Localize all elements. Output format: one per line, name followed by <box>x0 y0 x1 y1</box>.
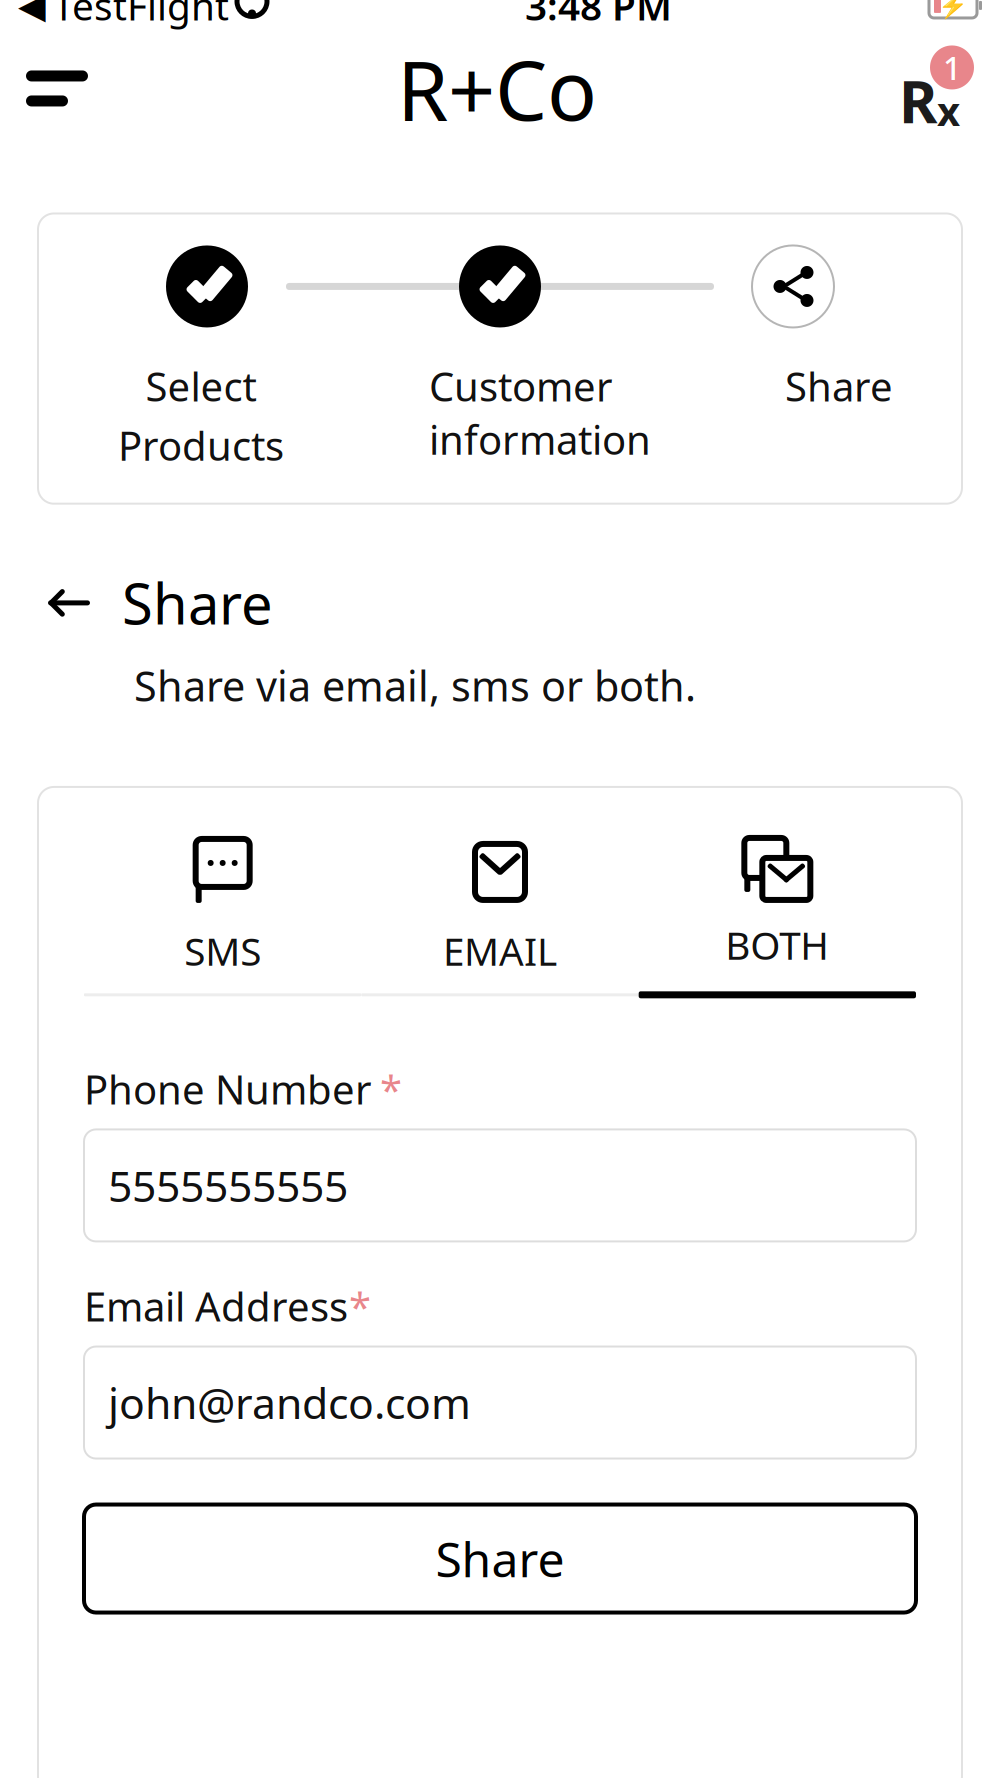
staticText: SMS <box>184 925 261 976</box>
staticText: 1 <box>943 46 961 89</box>
staticText: ◀ <box>18 0 46 26</box>
staticText: BOTH <box>725 919 829 970</box>
staticText: * <box>380 1062 402 1115</box>
button[interactable]: Prescriptions, 1 item <box>878 45 974 131</box>
staticText: Share via email, sms or both. <box>134 658 696 713</box>
button[interactable]: EMAIL <box>361 843 639 998</box>
button[interactable]: Back <box>38 575 100 631</box>
button[interactable]: SMS <box>84 843 361 998</box>
staticText: ⚡ <box>938 0 968 19</box>
staticText: Email Address <box>84 1279 348 1332</box>
staticText: Select <box>145 359 256 413</box>
staticText: * <box>349 1279 371 1332</box>
staticText: Customer information <box>429 359 651 466</box>
staticText: Products <box>118 419 284 472</box>
staticText: 3:48 PM <box>525 0 672 31</box>
staticText: x <box>937 84 960 137</box>
button[interactable]: BOTH <box>639 843 916 998</box>
staticText: Share <box>435 1527 564 1590</box>
staticText: 5555555555 <box>108 1157 348 1214</box>
staticText: Share <box>785 359 893 413</box>
staticText: Share <box>122 566 273 640</box>
button[interactable]: Menu <box>26 51 116 125</box>
staticText: TestFlight <box>53 0 229 31</box>
staticText: R+Co <box>397 34 597 143</box>
staticText: john@randco.com <box>108 1374 471 1431</box>
staticText: Phone Number <box>84 1062 372 1115</box>
staticText: R <box>899 61 937 139</box>
button[interactable]: Share <box>84 1504 916 1612</box>
staticText: EMAIL <box>443 925 557 976</box>
